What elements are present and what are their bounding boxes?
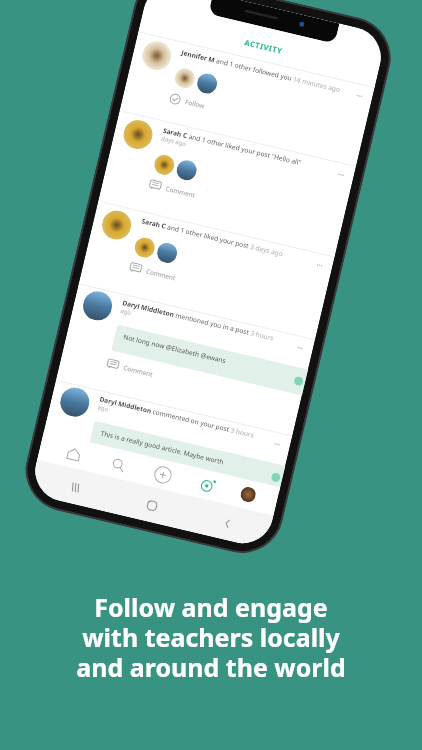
button[interactable]: ••• xyxy=(337,170,345,178)
button[interactable]: Comment xyxy=(106,358,154,379)
staticText: ago xyxy=(97,403,109,413)
button[interactable]: Profile xyxy=(239,485,257,503)
staticText: days ago xyxy=(160,135,187,148)
staticText: Not long now @Elizabeth @ewans xyxy=(123,332,227,365)
staticText: Comment xyxy=(165,184,196,200)
button[interactable]: Sarah C and 1 other liked your post 3 da… xyxy=(79,201,335,339)
button[interactable]: Search xyxy=(104,450,133,479)
staticText: Daryl Middleton commented on your post 3… xyxy=(99,394,255,440)
button[interactable]: Notifications xyxy=(193,471,222,500)
button[interactable]: Jennifer M and 1 other followed you 14 m… xyxy=(120,31,375,166)
button[interactable]: Daryl Middleton mentioned you in a post … xyxy=(56,283,315,436)
button[interactable]: Home xyxy=(59,439,88,468)
staticText: Follow xyxy=(184,97,206,111)
button[interactable]: Recent apps xyxy=(64,476,86,498)
staticText: Comment xyxy=(145,267,177,282)
button[interactable]: Daryl Middleton commented on your post 3… xyxy=(33,380,292,532)
staticText: Sarah C and 1 other liked your post "Hel… xyxy=(162,126,302,167)
staticText: Follow and engage with teachers locally … xyxy=(0,590,422,684)
button[interactable]: Comment xyxy=(148,179,196,200)
staticText: This is a really good article. Maybe wor… xyxy=(100,429,226,467)
button[interactable]: Home xyxy=(141,494,162,516)
button[interactable]: Sarah C and 1 other liked your post "Hel… xyxy=(98,110,356,256)
button[interactable]: Comment xyxy=(129,262,177,282)
button[interactable]: ••• xyxy=(316,261,324,269)
button[interactable]: Follow xyxy=(169,92,206,111)
button[interactable]: Back xyxy=(217,512,238,534)
staticText: Daryl Middleton mentioned you in a post … xyxy=(121,298,275,343)
button[interactable]: ••• xyxy=(356,91,364,100)
staticText: Jennifer M and 1 other followed you 14 m… xyxy=(181,48,341,94)
staticText: Comment xyxy=(122,363,154,379)
button[interactable]: ••• xyxy=(296,343,305,352)
button[interactable]: ••• xyxy=(273,440,282,448)
staticText: ACTIVITY xyxy=(243,37,284,56)
staticText: ago xyxy=(120,307,132,317)
button[interactable]: Create post xyxy=(148,460,177,489)
staticText: Sarah C and 1 other liked your post 3 da… xyxy=(141,216,284,258)
